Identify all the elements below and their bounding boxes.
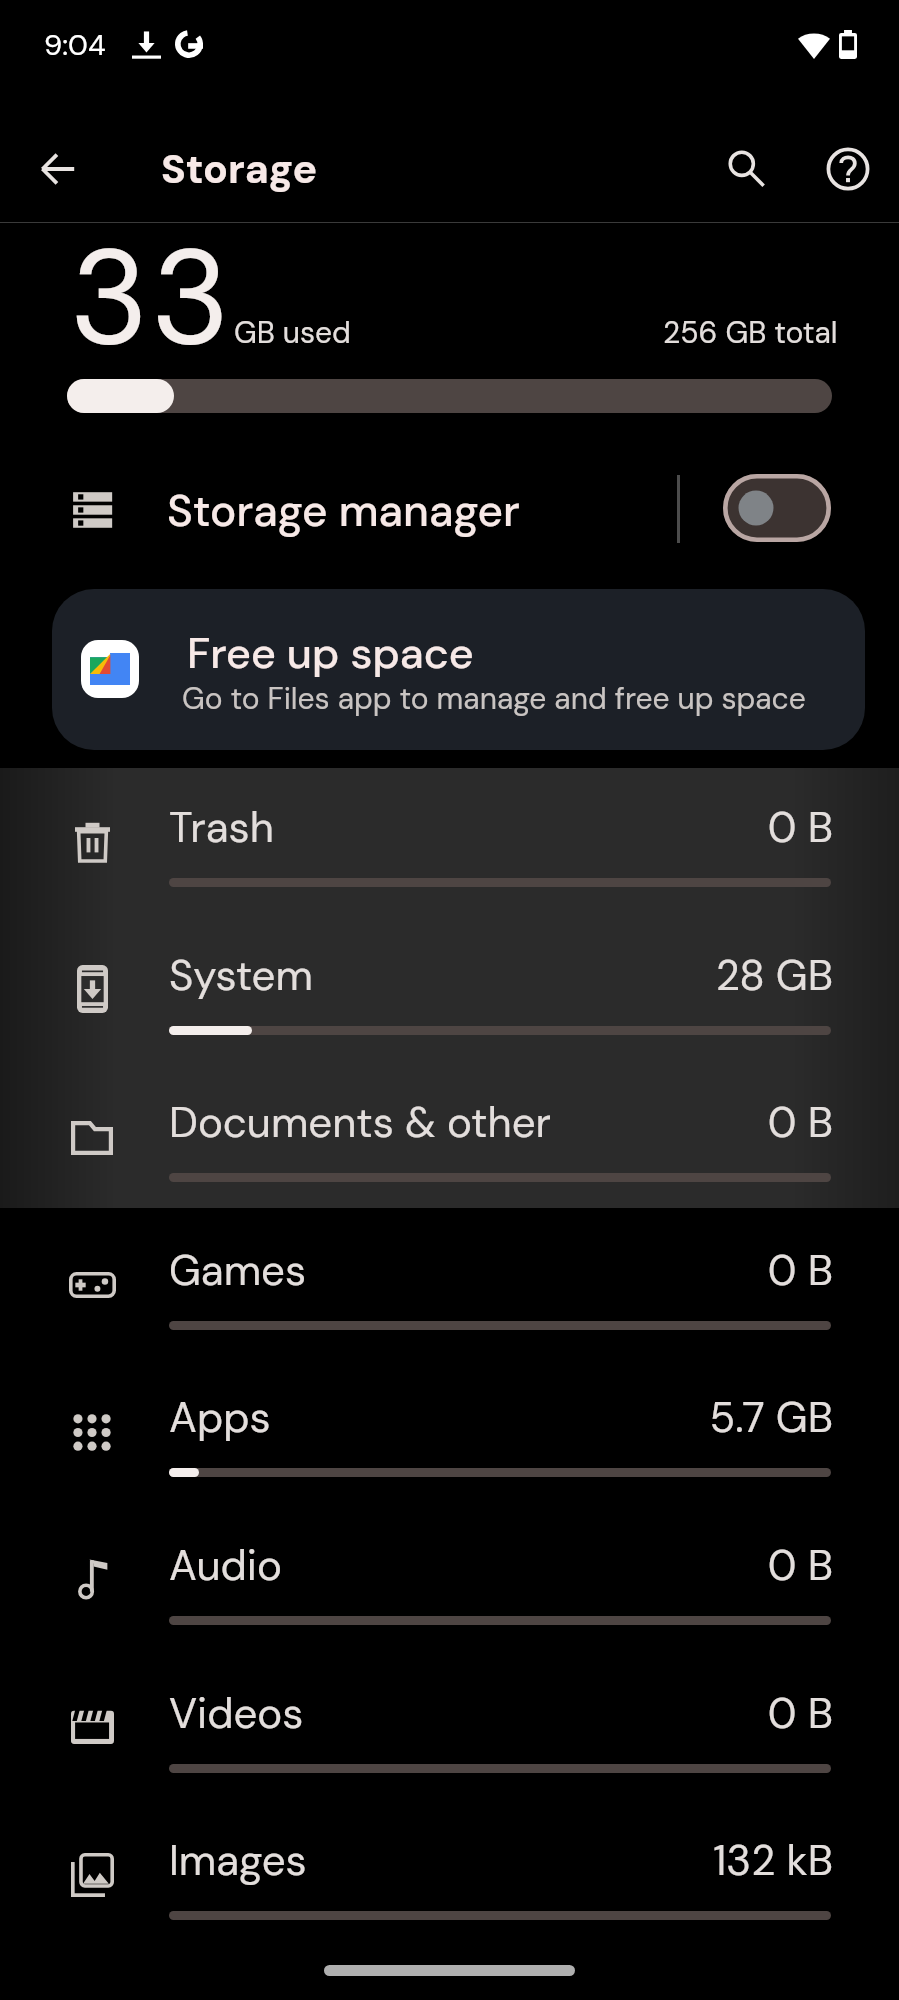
button[interactable]: Documents & other	[0, 1062, 899, 1210]
button[interactable]: Apps	[0, 1357, 899, 1505]
staticText: Storage manager	[167, 482, 520, 539]
button[interactable]: Videos	[0, 1653, 899, 1801]
button[interactable]: Games	[0, 1210, 899, 1358]
staticText: Go to Files app to manage and free up sp…	[182, 679, 806, 718]
button[interactable]: Help	[812, 133, 884, 205]
staticText: 0 B	[433, 1095, 833, 1150]
staticText: Games	[169, 1243, 307, 1298]
staticText: Images	[169, 1833, 307, 1888]
button[interactable]: System	[0, 915, 899, 1063]
staticText: 132 kB	[433, 1833, 833, 1888]
staticText: 0 B	[433, 1686, 833, 1741]
staticText: Storage	[161, 142, 318, 195]
staticText: Videos	[169, 1686, 304, 1741]
button[interactable]: Search	[710, 132, 782, 204]
staticText: 28 GB	[433, 948, 833, 1003]
button[interactable]: Free up space	[52, 589, 865, 750]
staticText: 256 GB total	[663, 313, 838, 352]
staticText: 0 B	[433, 1538, 833, 1593]
button[interactable]: Storage manager	[0, 446, 899, 574]
button[interactable]: Back	[22, 133, 94, 205]
staticText: Trash	[169, 800, 274, 855]
staticText: Apps	[169, 1390, 271, 1445]
staticText: 0 B	[433, 800, 833, 855]
staticText: Audio	[169, 1538, 282, 1593]
staticText: Documents & other	[169, 1095, 552, 1150]
button[interactable]: Audio	[0, 1505, 899, 1653]
button[interactable]: Images	[0, 1800, 899, 1948]
button[interactable]: Storage manager toggle	[723, 474, 831, 542]
staticText: GB used	[234, 313, 351, 352]
staticText: 9:04	[44, 26, 106, 64]
staticText: 5.7 GB	[433, 1390, 833, 1445]
button[interactable]: Trash	[0, 767, 899, 915]
staticText: System	[169, 948, 313, 1003]
staticText: 0 B	[433, 1243, 833, 1298]
staticText: 33	[70, 211, 233, 384]
staticText: Free up space	[187, 625, 474, 681]
